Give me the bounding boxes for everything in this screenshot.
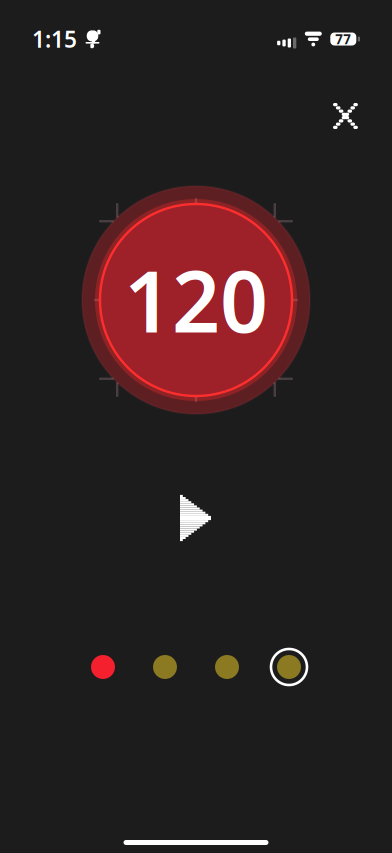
button[interactable]: Close — [320, 90, 372, 142]
staticText: 77 — [335, 30, 351, 48]
button[interactable]: Red — [82, 646, 124, 688]
staticText: 120 — [124, 244, 268, 356]
staticText: 1:15 — [32, 24, 77, 54]
button[interactable]: Olive 3, selected — [268, 646, 310, 688]
button[interactable]: Play — [148, 476, 244, 560]
button[interactable]: Olive 2 — [206, 646, 248, 688]
button[interactable]: Olive 1 — [144, 646, 186, 688]
